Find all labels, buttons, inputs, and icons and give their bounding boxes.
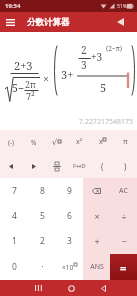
staticText: (2−π) — [106, 44, 123, 53]
staticText: 5− — [12, 81, 24, 95]
staticText: 2 — [81, 43, 87, 57]
button[interactable] — [97, 283, 109, 293]
staticText: × — [94, 210, 100, 222]
button[interactable]: = — [110, 254, 137, 280]
button[interactable]: 0 — [0, 254, 28, 280]
staticText: ×10 — [62, 263, 74, 272]
button[interactable]: 3 — [56, 228, 83, 254]
button[interactable] — [83, 178, 110, 203]
button[interactable]: F↔D — [68, 154, 91, 178]
button[interactable]: 8 — [28, 178, 56, 203]
staticText: 7.227217548175 — [79, 117, 133, 127]
staticText: ANS — [90, 262, 104, 272]
button[interactable] — [22, 154, 45, 178]
button[interactable]: 9 — [56, 178, 83, 203]
button[interactable]: · — [28, 254, 56, 280]
staticText: √ — [52, 138, 58, 147]
staticText: +3 — [91, 50, 103, 64]
staticText: 7 — [12, 185, 17, 197]
staticText: 8 — [40, 185, 45, 197]
staticText: 3 — [67, 235, 72, 247]
button[interactable]: ÷ — [110, 203, 137, 228]
staticText: 6 — [67, 210, 72, 222]
staticText: 分数计算器 — [27, 17, 70, 28]
staticText: F↔D — [73, 162, 86, 170]
button[interactable]: % — [22, 130, 45, 154]
staticText: = — [120, 260, 127, 275]
button[interactable]: + — [83, 228, 110, 254]
staticText: π — [123, 137, 128, 147]
staticText: 3+ — [61, 67, 74, 82]
button[interactable]: 6 — [56, 203, 83, 228]
staticText: + — [94, 235, 100, 247]
button[interactable]: √ — [45, 130, 68, 154]
button[interactable]: ( — [91, 154, 114, 178]
staticText: 7² — [26, 90, 35, 102]
button[interactable] — [0, 154, 22, 178]
button[interactable]: (-) — [0, 130, 22, 154]
staticText: x² — [76, 137, 83, 147]
button[interactable]: x — [91, 130, 114, 154]
button[interactable] — [117, 18, 124, 26]
staticText: ) — [124, 161, 127, 172]
staticText: 5 — [40, 210, 45, 222]
staticText: AC — [119, 186, 128, 196]
staticText: % — [31, 138, 37, 147]
button[interactable]: × — [83, 203, 110, 228]
staticText: − — [121, 235, 127, 247]
button[interactable]: 1 — [0, 228, 28, 254]
button[interactable]: 5 — [28, 203, 56, 228]
button[interactable] — [6, 19, 15, 26]
staticText: 5 — [100, 80, 107, 95]
button[interactable]: x² — [68, 130, 91, 154]
staticText: 1 — [12, 235, 17, 247]
button[interactable] — [32, 283, 44, 293]
button[interactable]: π — [114, 130, 137, 154]
button[interactable] — [65, 283, 77, 293]
staticText: 4 — [12, 210, 17, 222]
button[interactable]: − — [110, 228, 137, 254]
staticText: 51% — [117, 3, 127, 10]
staticText: 3 — [81, 58, 87, 72]
staticText: 2+3 — [14, 58, 33, 73]
button[interactable]: 7 — [0, 178, 28, 203]
staticText: ( — [101, 161, 104, 172]
button[interactable] — [45, 154, 68, 178]
staticText: x — [99, 137, 103, 147]
staticText: 2π — [25, 78, 36, 90]
button[interactable]: ×10 — [56, 254, 83, 280]
button[interactable]: ) — [114, 154, 137, 178]
staticText: 9 — [67, 185, 72, 197]
staticText: 2 — [40, 235, 45, 247]
button[interactable]: ANS — [83, 254, 110, 280]
staticText: ÷ — [121, 210, 127, 222]
button[interactable]: 4 — [0, 203, 28, 228]
button[interactable]: 2 — [28, 228, 56, 254]
staticText: (-) — [8, 138, 14, 147]
staticText: 19:54 — [5, 2, 21, 10]
button[interactable]: AC — [110, 178, 137, 203]
staticText: · — [41, 261, 44, 273]
staticText: × — [43, 72, 49, 86]
staticText: 0 — [12, 261, 17, 273]
